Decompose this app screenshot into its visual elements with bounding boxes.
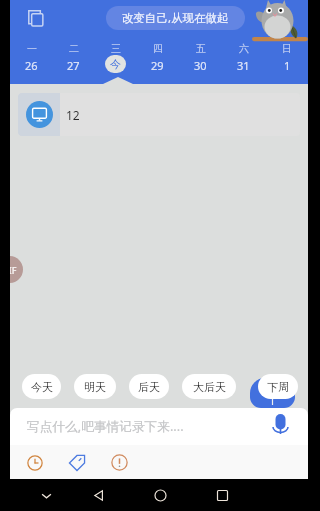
button[interactable]: Home — [145, 480, 175, 510]
button[interactable]: 五 — [179, 42, 222, 76]
staticText: 30 — [194, 58, 207, 73]
button[interactable]: 六 — [222, 42, 265, 76]
button[interactable]: Recents — [207, 480, 237, 510]
staticText: 下周 — [267, 380, 289, 394]
button[interactable]: GIF — [10, 256, 23, 283]
staticText: 四 — [153, 42, 163, 55]
button[interactable]: 三 — [94, 42, 136, 76]
button[interactable]: Hide keyboard — [31, 480, 61, 510]
staticText: 一 — [27, 42, 37, 55]
button[interactable]: 今天 — [22, 374, 61, 399]
button[interactable]: 12 — [18, 93, 300, 136]
staticText: 29 — [151, 58, 164, 73]
staticText: GIF — [10, 264, 17, 276]
staticText: 改变自己,从现在做起 — [122, 10, 229, 26]
button[interactable]: 后天 — [129, 374, 169, 399]
button[interactable]: Tag — [61, 447, 92, 478]
staticText: 26 — [25, 58, 38, 73]
button[interactable]: 四 — [136, 42, 179, 76]
staticText: 六 — [239, 42, 249, 55]
button[interactable]: Copy — [23, 5, 49, 31]
button[interactable]: 大后天 — [182, 374, 236, 399]
button[interactable]: Back — [83, 480, 113, 510]
staticText: 二 — [69, 42, 79, 55]
staticText: 日 — [282, 42, 292, 55]
staticText: 五 — [196, 42, 206, 55]
button[interactable]: 日 — [265, 42, 308, 76]
button[interactable]: Send — [250, 378, 295, 408]
staticText: 后天 — [138, 380, 160, 394]
button[interactable]: Voice input — [266, 409, 295, 438]
staticText: 12 — [66, 107, 80, 123]
button[interactable]: 二 — [52, 42, 94, 76]
button[interactable]: 写点什么,吧事情记录下来.... — [27, 408, 184, 444]
staticText: 三 — [111, 42, 121, 55]
button[interactable]: 下周 — [258, 374, 298, 399]
staticText: 1 — [284, 58, 291, 73]
button[interactable]: Priority — [104, 447, 135, 478]
staticText: 大后天 — [193, 380, 226, 394]
staticText: 今 — [110, 57, 121, 71]
staticText: 27 — [67, 58, 80, 73]
button[interactable]: Reminder time — [19, 447, 50, 478]
staticText: 今天 — [31, 380, 53, 394]
button[interactable]: 一 — [10, 42, 52, 76]
staticText: 写点什么,吧事情记录下来.... — [27, 417, 184, 434]
button[interactable]: 改变自己,从现在做起 — [106, 6, 245, 30]
staticText: 明天 — [84, 380, 106, 394]
staticText: 31 — [237, 58, 250, 73]
button[interactable]: 明天 — [74, 374, 116, 399]
